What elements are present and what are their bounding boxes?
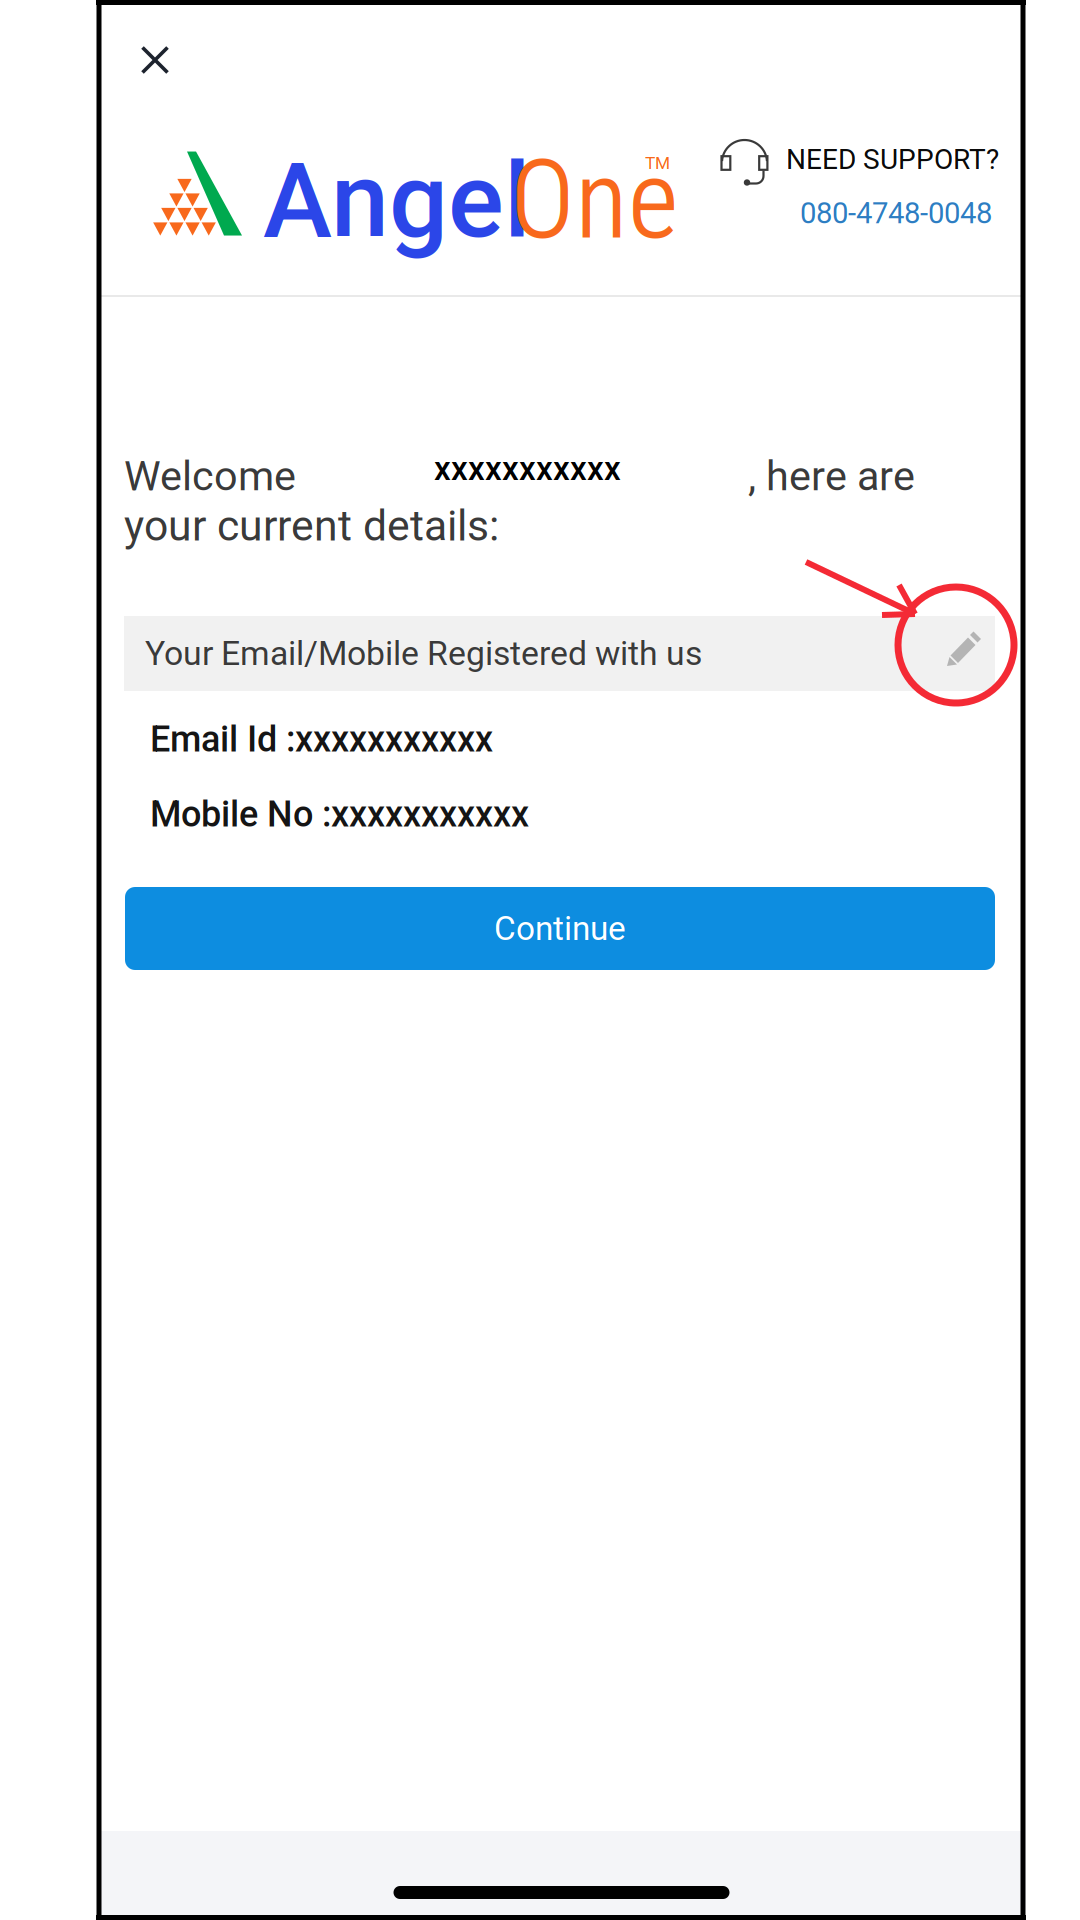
button[interactable]: Close xyxy=(131,36,179,84)
staticText: TM xyxy=(645,153,670,173)
staticText: Welcome xyxy=(124,452,296,500)
button[interactable]: Continue xyxy=(125,887,995,970)
staticText: Continue xyxy=(494,909,626,948)
staticText: One xyxy=(510,136,679,264)
button[interactable]: Edit registered email or mobile xyxy=(124,616,995,691)
staticText: Email Id :xxxxxxxxxxx xyxy=(150,718,493,760)
staticText: , here are xyxy=(748,452,915,500)
staticText: xxxxxxxxxxx xyxy=(434,449,621,488)
staticText: 080-4748-0048 xyxy=(800,196,992,230)
button[interactable]: NEED SUPPORT? xyxy=(786,143,999,176)
button[interactable]: 080-4748-0048 xyxy=(800,196,992,230)
staticText: NEED SUPPORT? xyxy=(786,143,999,176)
staticText: Mobile No :xxxxxxxxxxx xyxy=(150,793,529,835)
staticText: Your Email/Mobile Registered with us xyxy=(145,634,702,673)
staticText: your current details: xyxy=(124,501,499,551)
staticText: Angel xyxy=(263,140,531,262)
